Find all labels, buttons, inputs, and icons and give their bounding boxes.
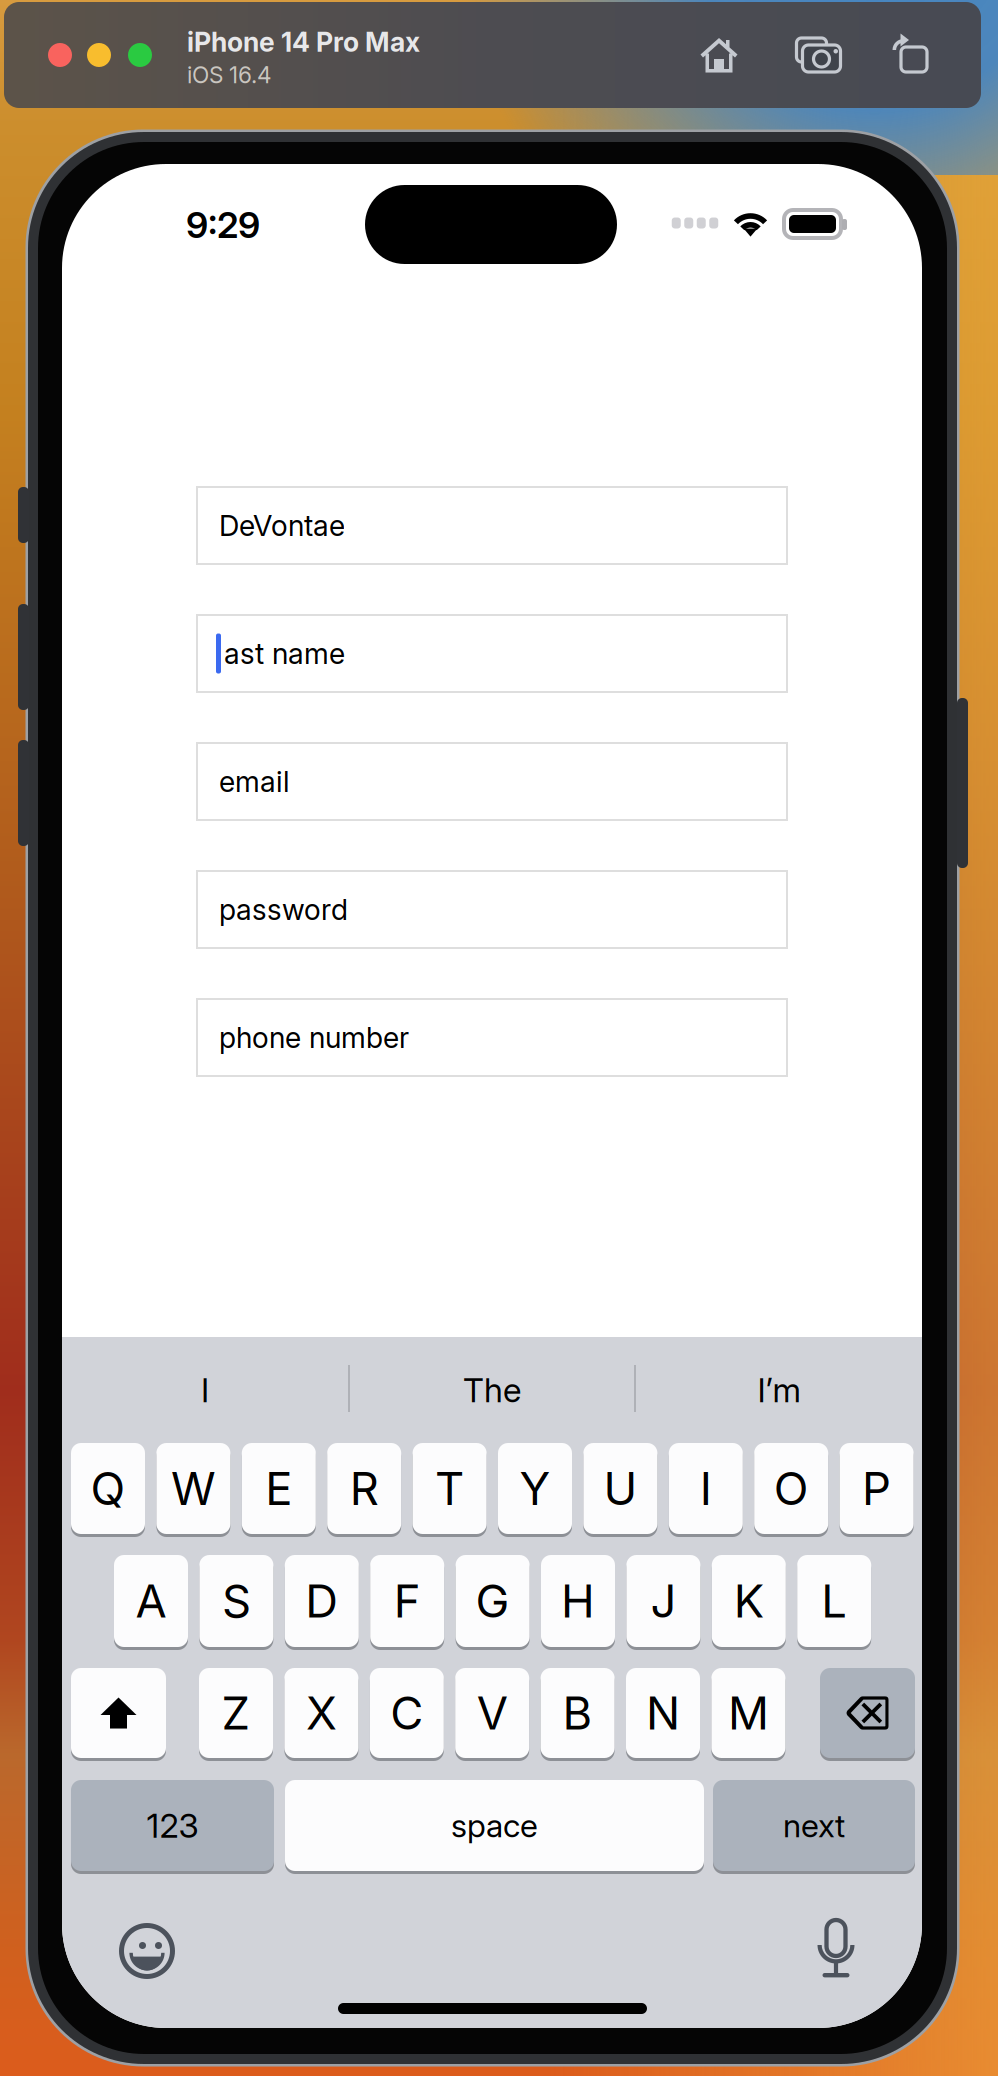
staticText: V (477, 1686, 508, 1740)
button[interactable]: X (284, 1668, 358, 1758)
staticText: iOS 16.4 (187, 61, 272, 89)
button[interactable]: F (370, 1555, 444, 1647)
button[interactable]: M (711, 1668, 785, 1758)
staticText: email (219, 764, 290, 799)
staticText: 123 (146, 1805, 198, 1846)
button[interactable]: Shift (71, 1668, 166, 1758)
button[interactable]: space (285, 1780, 704, 1871)
button[interactable]: O (754, 1443, 828, 1534)
staticText: O (774, 1461, 809, 1516)
button[interactable]: Emoji (120, 1924, 174, 1978)
button[interactable]: next (713, 1780, 915, 1871)
staticText: S (222, 1574, 251, 1628)
button[interactable]: V (455, 1668, 529, 1758)
button[interactable]: Delete (820, 1668, 915, 1758)
button[interactable]: K (712, 1555, 786, 1647)
button[interactable]: password (197, 871, 787, 948)
staticText: A (135, 1574, 166, 1628)
staticText: E (265, 1461, 292, 1516)
button[interactable]: email (197, 743, 787, 820)
staticText: U (603, 1461, 637, 1516)
button[interactable]: Y (498, 1443, 572, 1534)
staticText: C (390, 1686, 423, 1740)
staticText: R (350, 1461, 379, 1516)
staticText: Z (221, 1686, 250, 1740)
button[interactable]: I’m (724, 1370, 834, 1410)
button[interactable]: L (797, 1555, 871, 1647)
staticText: T (435, 1461, 464, 1516)
staticText: N (646, 1686, 680, 1740)
button[interactable]: Screenshot (796, 37, 841, 73)
staticText: X (306, 1686, 337, 1740)
staticText: ast name (224, 636, 345, 671)
button[interactable]: T (413, 1443, 487, 1534)
button[interactable]: J (626, 1555, 700, 1647)
button[interactable]: Z (199, 1668, 273, 1758)
staticText: Q (90, 1461, 125, 1516)
staticText: I (201, 1370, 209, 1410)
button[interactable]: N (626, 1668, 700, 1758)
button[interactable]: H (541, 1555, 615, 1647)
button[interactable]: R (327, 1443, 401, 1534)
button[interactable]: D (285, 1555, 359, 1647)
staticText: iPhone 14 Pro Max (187, 26, 420, 58)
button[interactable]: Zoom (128, 43, 152, 67)
button[interactable]: U (583, 1443, 657, 1534)
staticText: J (650, 1574, 676, 1628)
button[interactable]: Q (71, 1443, 145, 1534)
button[interactable]: Rotate (883, 29, 927, 73)
staticText: space (451, 1806, 538, 1845)
staticText: B (563, 1686, 593, 1740)
button[interactable]: C (370, 1668, 444, 1758)
button[interactable]: The (437, 1370, 547, 1410)
button[interactable]: ast name (197, 615, 787, 692)
button[interactable]: I (150, 1370, 260, 1410)
button[interactable]: Dictation (814, 1920, 858, 1980)
button[interactable]: I (669, 1443, 743, 1534)
staticText: Y (519, 1461, 550, 1516)
button[interactable]: S (199, 1555, 273, 1647)
button[interactable]: Close (48, 43, 72, 67)
button[interactable]: Home (700, 36, 738, 74)
staticText: D (305, 1574, 338, 1628)
button[interactable]: P (840, 1443, 914, 1534)
staticText: F (394, 1574, 421, 1628)
staticText: phone number (219, 1020, 409, 1055)
staticText: The (463, 1370, 521, 1410)
staticText: K (734, 1574, 764, 1628)
staticText: L (821, 1574, 847, 1628)
button[interactable]: E (242, 1443, 316, 1534)
button[interactable]: G (456, 1555, 530, 1647)
staticText: G (476, 1574, 510, 1628)
button[interactable]: Minimize (87, 43, 111, 67)
staticText: M (728, 1686, 769, 1740)
staticText: I (700, 1461, 712, 1516)
staticText: I’m (757, 1370, 800, 1410)
button[interactable]: 123 (71, 1780, 274, 1871)
staticText: password (219, 892, 348, 927)
button[interactable]: W (156, 1443, 230, 1534)
staticText: W (171, 1461, 216, 1516)
button[interactable]: A (114, 1555, 188, 1647)
staticText: P (862, 1461, 891, 1516)
button[interactable]: B (541, 1668, 615, 1758)
staticText: 9:29 (186, 203, 260, 247)
button[interactable]: DeVontae (197, 487, 787, 564)
button[interactable]: phone number (197, 999, 787, 1076)
staticText: next (783, 1806, 845, 1845)
staticText: H (561, 1574, 595, 1628)
staticText: DeVontae (219, 508, 345, 543)
